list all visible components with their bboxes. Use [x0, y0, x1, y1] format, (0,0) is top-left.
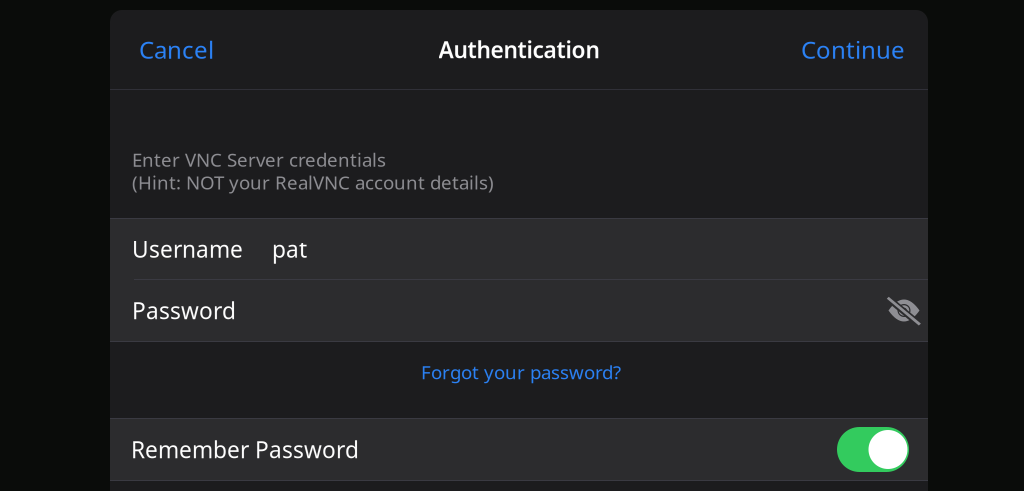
staticText: Enter VNC Server credentials: [132, 147, 386, 172]
staticText: Password: [132, 295, 236, 325]
staticText: (Hint: NOT your RealVNC account details): [132, 170, 494, 195]
staticText: Forgot your password?: [421, 360, 621, 384]
staticText: pat: [272, 234, 307, 264]
staticText: Username: [132, 234, 243, 264]
button[interactable]: Remember Password: [110, 419, 928, 480]
button[interactable]: Username: [110, 219, 928, 279]
button[interactable]: Continue: [801, 34, 905, 65]
staticText: Remember Password: [131, 434, 359, 464]
button[interactable]: Forgot your password?: [110, 342, 928, 418]
staticText: Authentication: [438, 34, 599, 64]
staticText: Continue: [801, 34, 905, 65]
staticText: Cancel: [139, 34, 214, 65]
button[interactable]: Cancel: [139, 34, 214, 65]
button[interactable]: Password: [110, 280, 880, 341]
button[interactable]: Show password: [880, 280, 928, 341]
